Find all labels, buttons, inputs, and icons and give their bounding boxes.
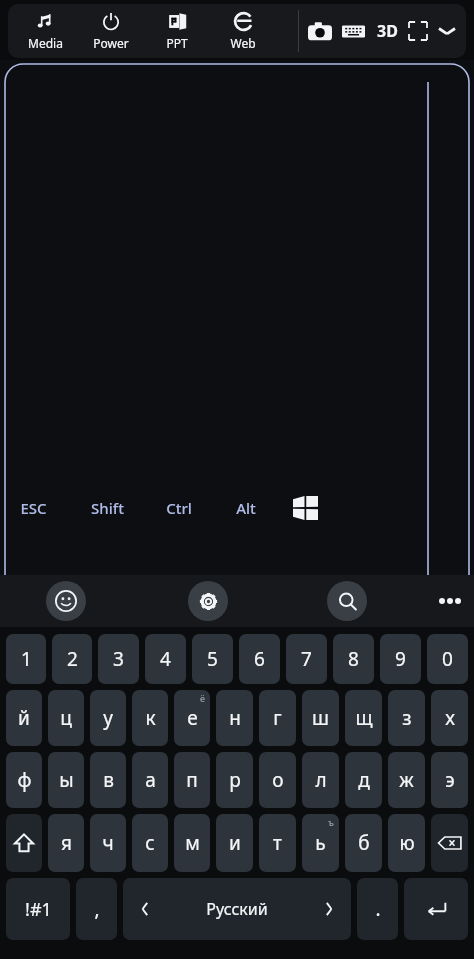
button[interactable]: а (132, 752, 168, 808)
staticText: з (402, 705, 412, 731)
button[interactable]: с (132, 814, 168, 872)
button[interactable]: я (48, 814, 84, 872)
button[interactable]: 6 (239, 634, 280, 684)
button[interactable]: и (216, 814, 253, 872)
button[interactable]: Search (327, 581, 367, 621)
staticText: ш (312, 705, 329, 731)
button[interactable]: т (259, 814, 296, 872)
staticText: , (94, 896, 100, 922)
button[interactable]: 5 (192, 634, 233, 684)
button[interactable]: Alt (226, 492, 266, 524)
button[interactable]: п (174, 752, 210, 808)
button[interactable]: Collapse (432, 19, 462, 43)
button[interactable] (431, 814, 468, 872)
button[interactable]: Keyboard (337, 17, 370, 46)
staticText: щ (355, 705, 373, 731)
button[interactable]: 8 (333, 634, 374, 684)
button[interactable]: ш (302, 690, 339, 746)
staticText: ъ (328, 816, 334, 828)
button[interactable]: в (90, 752, 126, 808)
button[interactable]: Русский (123, 878, 351, 940)
button[interactable]: 1 (6, 634, 46, 684)
button[interactable]: ESC (10, 492, 57, 524)
button[interactable]: Settings (188, 581, 228, 621)
button[interactable]: х (431, 690, 468, 746)
button[interactable]: !#1 (6, 878, 70, 940)
button[interactable]: з (388, 690, 425, 746)
button[interactable]: Windows key (286, 489, 324, 527)
button[interactable]: э (431, 752, 468, 808)
button[interactable]: 3D (370, 14, 404, 48)
staticText: у (103, 705, 113, 731)
button[interactable]: ч (90, 814, 126, 872)
button[interactable]: 7 (286, 634, 327, 684)
button[interactable]: 2 (52, 634, 92, 684)
button[interactable]: Web (210, 4, 276, 55)
staticText: 5 (207, 646, 218, 672)
staticText: 8 (348, 646, 359, 672)
button[interactable]: 0 (427, 634, 468, 684)
staticText: д (358, 767, 370, 793)
button[interactable]: Media (12, 4, 78, 55)
button[interactable]: щ (345, 690, 382, 746)
button[interactable]: г (259, 690, 296, 746)
staticText: ы (59, 767, 74, 793)
button[interactable]: ь (302, 814, 339, 872)
staticText: 4 (160, 646, 171, 672)
staticText: 3 (113, 646, 124, 672)
button[interactable]: й (6, 690, 42, 746)
button[interactable]: Shift (81, 492, 134, 524)
staticText: Power (93, 35, 129, 51)
button[interactable]: к (132, 690, 168, 746)
staticText: ц (60, 705, 72, 731)
button[interactable]: PPT (144, 4, 210, 55)
button[interactable]: 3 (98, 634, 139, 684)
button[interactable] (6, 814, 42, 872)
staticText: . (375, 896, 381, 922)
staticText: Alt (236, 498, 256, 518)
button[interactable]: д (345, 752, 382, 808)
staticText: п (186, 767, 198, 793)
button[interactable]: Emoji (46, 581, 86, 621)
button[interactable]: ц (48, 690, 84, 746)
button[interactable]: Screenshot (303, 15, 337, 47)
button[interactable]: 4 (145, 634, 186, 684)
button[interactable]: е (174, 690, 210, 746)
staticText: т (273, 830, 282, 856)
staticText: г (273, 705, 282, 731)
staticText: б (358, 830, 370, 856)
button[interactable]: м (174, 814, 210, 872)
staticText: 0 (442, 646, 453, 672)
staticText: 6 (254, 646, 265, 672)
button[interactable]: More options (432, 583, 468, 619)
button[interactable]: л (302, 752, 339, 808)
staticText: м (185, 830, 200, 856)
button[interactable] (404, 878, 468, 940)
staticText: ж (399, 767, 414, 793)
button[interactable]: 9 (380, 634, 421, 684)
staticText: Web (230, 35, 256, 51)
button[interactable]: ж (388, 752, 425, 808)
staticText: ч (102, 830, 114, 856)
button[interactable]: Fullscreen (404, 17, 432, 45)
staticText: л (315, 767, 327, 793)
button[interactable]: Power (78, 4, 144, 55)
button[interactable]: ы (48, 752, 84, 808)
staticText: э (445, 767, 455, 793)
staticText: 7 (301, 646, 312, 672)
button[interactable]: , (76, 878, 117, 940)
button[interactable]: Ctrl (156, 492, 202, 524)
staticText: в (103, 767, 114, 793)
button[interactable]: р (216, 752, 253, 808)
button[interactable]: н (216, 690, 253, 746)
staticText: 1 (21, 646, 32, 672)
button[interactable]: ю (388, 814, 425, 872)
button[interactable]: о (259, 752, 296, 808)
button[interactable]: б (345, 814, 382, 872)
staticText: ё (200, 692, 205, 704)
button[interactable]: у (90, 690, 126, 746)
button[interactable]: . (357, 878, 398, 940)
staticText: ю (399, 830, 415, 856)
button[interactable]: ф (6, 752, 42, 808)
staticText: Shift (91, 498, 124, 518)
